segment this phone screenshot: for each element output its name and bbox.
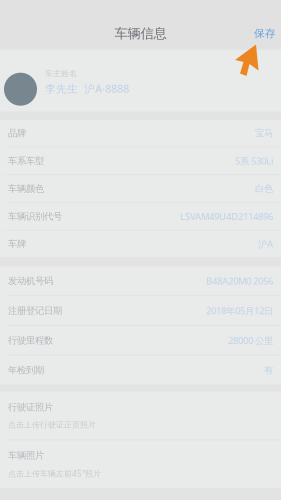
staticText: 年检到期 [8,364,44,376]
button[interactable]: 行驶证照片 [0,392,281,440]
staticText: LSVAM49U4D2114896 [180,210,273,222]
staticText: 车系车型 [8,155,44,167]
staticText: 李先生 沪A·8888 [45,81,129,96]
staticText: 2018年05月12日 [206,304,273,317]
button[interactable]: 车系车型 [0,147,281,174]
staticText: 发动机号码 [8,275,53,287]
button[interactable]: 保存 [249,20,281,47]
staticText: 车辆信息 [114,25,166,42]
staticText: 有 [264,364,273,376]
button[interactable]: 车主姓名 [0,50,281,112]
staticText: 5系 530Li [235,155,273,167]
staticText: 28000 公里 [228,334,273,347]
staticText: 车辆照片 [8,450,44,461]
staticText: 注册登记日期 [8,305,62,316]
button[interactable]: 行驶里程数 [0,326,281,355]
staticText: 品牌 [8,127,26,139]
staticText: B48A20M0 2056 [206,275,273,287]
staticText: 宝马 [255,127,273,139]
staticText: 车辆颜色 [8,183,44,194]
staticText: 行驶里程数 [8,335,53,346]
button[interactable]: 品牌 [0,120,281,147]
staticText: 车辆识别代号 [8,211,62,222]
button[interactable]: 发动机号码 [0,266,281,295]
staticText: 车牌 [8,238,26,250]
staticText: 点击上传车辆左前45°照片 [8,468,101,479]
staticText: 行驶证照片 [8,401,53,413]
button[interactable]: 车辆照片 [0,440,281,488]
button[interactable]: 车辆识别代号 [0,203,281,230]
button[interactable]: 车牌 [0,230,281,257]
button[interactable]: 车辆颜色 [0,175,281,202]
staticText: 车主姓名 [45,69,77,78]
staticText: 点击上传行驶证正页照片 [8,420,96,430]
staticText: 沪A [258,238,273,250]
button[interactable]: 注册登记日期 [0,296,281,325]
staticText: 保存 [254,27,276,40]
staticText: 白色 [255,183,273,194]
button[interactable]: 年检到期 [0,356,281,385]
